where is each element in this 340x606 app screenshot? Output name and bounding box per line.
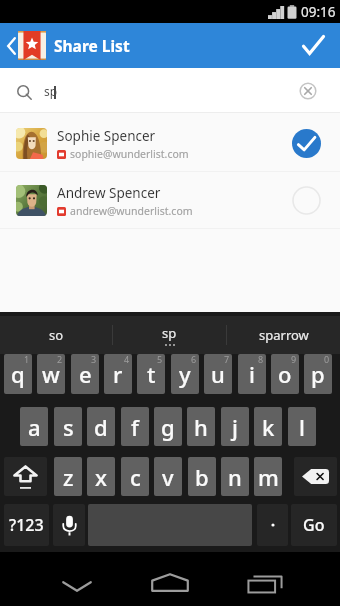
button[interactable]: Back bbox=[0, 23, 48, 68]
staticText: 2 bbox=[57, 354, 63, 365]
staticText: b bbox=[195, 462, 209, 492]
staticText: q bbox=[11, 359, 25, 389]
staticText: w bbox=[42, 359, 60, 389]
staticText: Andrew Spencer bbox=[57, 184, 161, 202]
staticText: v bbox=[162, 462, 174, 492]
button[interactable]: Clear search bbox=[285, 69, 329, 112]
staticText: Go bbox=[303, 514, 325, 536]
staticText: i bbox=[249, 359, 255, 389]
button[interactable]: e bbox=[71, 354, 99, 394]
button[interactable]: Voice input bbox=[53, 504, 85, 546]
button[interactable]: x bbox=[87, 457, 115, 496]
staticText: r bbox=[113, 359, 123, 389]
button[interactable]: n bbox=[221, 457, 249, 496]
button[interactable]: Backspace bbox=[294, 457, 337, 496]
button[interactable]: y bbox=[171, 354, 199, 394]
staticText: g bbox=[161, 412, 175, 442]
button[interactable]: o bbox=[271, 354, 299, 394]
staticText: sophie@wunderlist.com bbox=[70, 147, 189, 161]
button[interactable]: Confirm bbox=[294, 23, 340, 68]
button[interactable]: c bbox=[121, 457, 149, 496]
button[interactable]: Home bbox=[135, 552, 205, 606]
button[interactable]: r bbox=[104, 354, 132, 394]
staticText: Sophie Spencer bbox=[57, 127, 156, 145]
staticText: 6 bbox=[191, 354, 197, 365]
button[interactable]: u bbox=[204, 354, 232, 394]
button[interactable]: h bbox=[187, 407, 215, 446]
staticText: u bbox=[211, 359, 225, 389]
staticText: 5 bbox=[157, 354, 163, 365]
button[interactable]: v bbox=[154, 457, 182, 496]
staticText: p bbox=[311, 359, 325, 389]
staticText: n bbox=[228, 462, 242, 492]
staticText: e bbox=[79, 359, 92, 389]
staticText: 4 bbox=[124, 354, 130, 365]
staticText: z bbox=[63, 462, 74, 492]
button[interactable]: l bbox=[288, 407, 316, 446]
button[interactable]: Period bbox=[257, 504, 288, 546]
staticText: h bbox=[194, 412, 208, 442]
button[interactable]: i bbox=[238, 354, 266, 394]
staticText: o bbox=[278, 359, 292, 389]
staticText: 7 bbox=[224, 354, 230, 365]
staticText: l bbox=[299, 412, 305, 442]
staticText: so bbox=[49, 326, 64, 344]
button[interactable]: s bbox=[54, 407, 82, 446]
staticText: sp bbox=[162, 324, 177, 342]
button[interactable]: sparrow bbox=[227, 316, 340, 354]
staticText: Share List bbox=[54, 35, 130, 56]
staticText: sp bbox=[44, 83, 58, 99]
staticText: m bbox=[258, 462, 279, 492]
staticText: 09:16 bbox=[301, 3, 336, 21]
button[interactable]: Sophie Spencer bbox=[0, 115, 340, 172]
button[interactable]: j bbox=[221, 407, 249, 446]
button[interactable]: g bbox=[154, 407, 182, 446]
staticText: j bbox=[232, 412, 238, 442]
button[interactable]: Andrew Spencer bbox=[0, 172, 340, 229]
staticText: a bbox=[28, 412, 41, 442]
staticText: s bbox=[63, 412, 74, 442]
staticText: 3 bbox=[91, 354, 97, 365]
button[interactable]: t bbox=[137, 354, 165, 394]
button[interactable]: a bbox=[20, 407, 48, 446]
staticText: d bbox=[94, 412, 108, 442]
button[interactable]: q bbox=[4, 354, 32, 394]
button[interactable]: ?123 bbox=[4, 504, 49, 546]
staticText: ?123 bbox=[9, 514, 44, 536]
staticText: 9 bbox=[291, 354, 297, 365]
button[interactable]: f bbox=[121, 407, 149, 446]
staticText: andrew@wunderlist.com bbox=[70, 204, 193, 218]
button[interactable]: Go bbox=[291, 504, 337, 546]
button[interactable]: Recent apps bbox=[231, 552, 301, 606]
button[interactable]: Shift bbox=[4, 457, 47, 496]
staticText: x bbox=[95, 462, 107, 492]
staticText: y bbox=[179, 359, 191, 389]
staticText: sparrow bbox=[259, 326, 309, 344]
button[interactable]: w bbox=[37, 354, 65, 394]
button[interactable]: m bbox=[254, 457, 282, 496]
button[interactable]: p bbox=[304, 354, 332, 394]
button[interactable]: z bbox=[54, 457, 82, 496]
staticText: k bbox=[262, 412, 275, 442]
staticText: 8 bbox=[258, 354, 264, 365]
button[interactable]: d bbox=[87, 407, 115, 446]
button[interactable]: sp bbox=[113, 316, 226, 354]
staticText: c bbox=[130, 462, 141, 492]
button[interactable]: k bbox=[254, 407, 282, 446]
button[interactable]: Hide keyboard bbox=[42, 552, 112, 606]
button[interactable]: so bbox=[0, 316, 112, 354]
staticText: t bbox=[147, 359, 156, 389]
staticText: 0 bbox=[324, 354, 330, 365]
button[interactable]: b bbox=[188, 457, 216, 496]
staticText: f bbox=[131, 412, 139, 442]
staticText: 1 bbox=[24, 354, 30, 365]
